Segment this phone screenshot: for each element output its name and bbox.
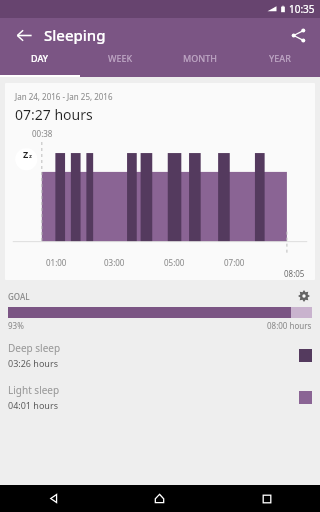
button[interactable]: Back [8,19,40,51]
button[interactable]: Share [282,19,314,51]
staticText: GOAL [8,291,30,302]
staticText: 93% [8,320,24,331]
staticText: 03:00 [104,257,125,268]
staticText: 10:35 [289,2,315,16]
staticText: 03:26 hours [8,357,58,369]
button[interactable]: MONTH [160,52,240,64]
staticText: Sleeping [44,25,106,45]
button[interactable]: Settings [296,288,312,304]
staticText: YEAR [269,52,291,64]
button[interactable]: GOAL [0,288,320,331]
staticText: 07:00 [224,257,245,268]
staticText: MONTH [183,52,218,64]
button[interactable]: Recents [213,485,320,512]
staticText: 07:27 hours [15,105,93,124]
button[interactable]: Back [0,485,106,512]
staticText: Light sleep [8,383,60,397]
staticText: 08:05 [284,268,305,279]
staticText: z [29,152,32,160]
staticText: 08:00 hours [267,320,312,331]
button[interactable]: YEAR [240,52,320,64]
button[interactable]: Jan 24, 2016 - Jan 25, 2016 [5,83,315,280]
staticText: Jan 24, 2016 - Jan 25, 2016 [15,91,113,102]
button[interactable]: WEEK [80,52,160,64]
staticText: 05:00 [164,257,185,268]
button[interactable]: Light sleep [0,383,320,411]
staticText: DAY [31,52,49,64]
button[interactable]: DAY [0,52,80,64]
button[interactable]: Deep sleep [0,341,320,369]
staticText: Deep sleep [8,341,61,355]
staticText: 01:00 [46,257,67,268]
staticText: WEEK [108,52,133,64]
button[interactable]: Home [106,485,213,512]
staticText: 04:01 hours [8,399,58,411]
staticText: Z [23,148,29,160]
staticText: 00:38 [32,128,53,139]
